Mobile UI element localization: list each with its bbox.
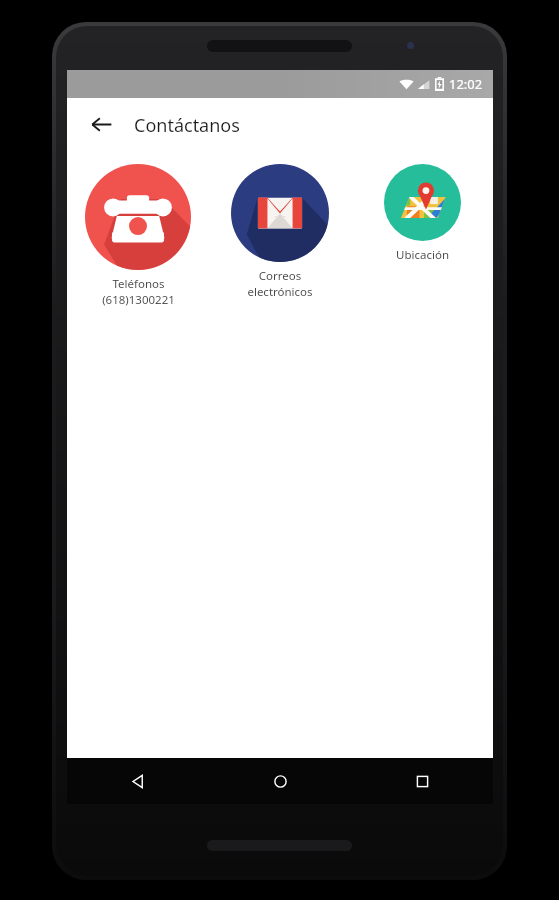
button[interactable]: Teléfonos [67, 160, 209, 313]
staticText: Correos electrónicos [247, 268, 313, 299]
button[interactable]: Correos electrónicos [209, 160, 351, 305]
button[interactable]: Home [209, 758, 351, 804]
staticText: Ubicación [396, 247, 449, 263]
button[interactable]: Recents [351, 758, 493, 804]
button[interactable]: Back [83, 106, 119, 142]
staticText: Contáctanos [134, 113, 240, 138]
button[interactable]: Back [67, 758, 209, 804]
button[interactable]: Ubicación [351, 160, 493, 269]
staticText: Teléfonos (618)1300221 [102, 276, 175, 307]
staticText: 12:02 [449, 75, 483, 93]
